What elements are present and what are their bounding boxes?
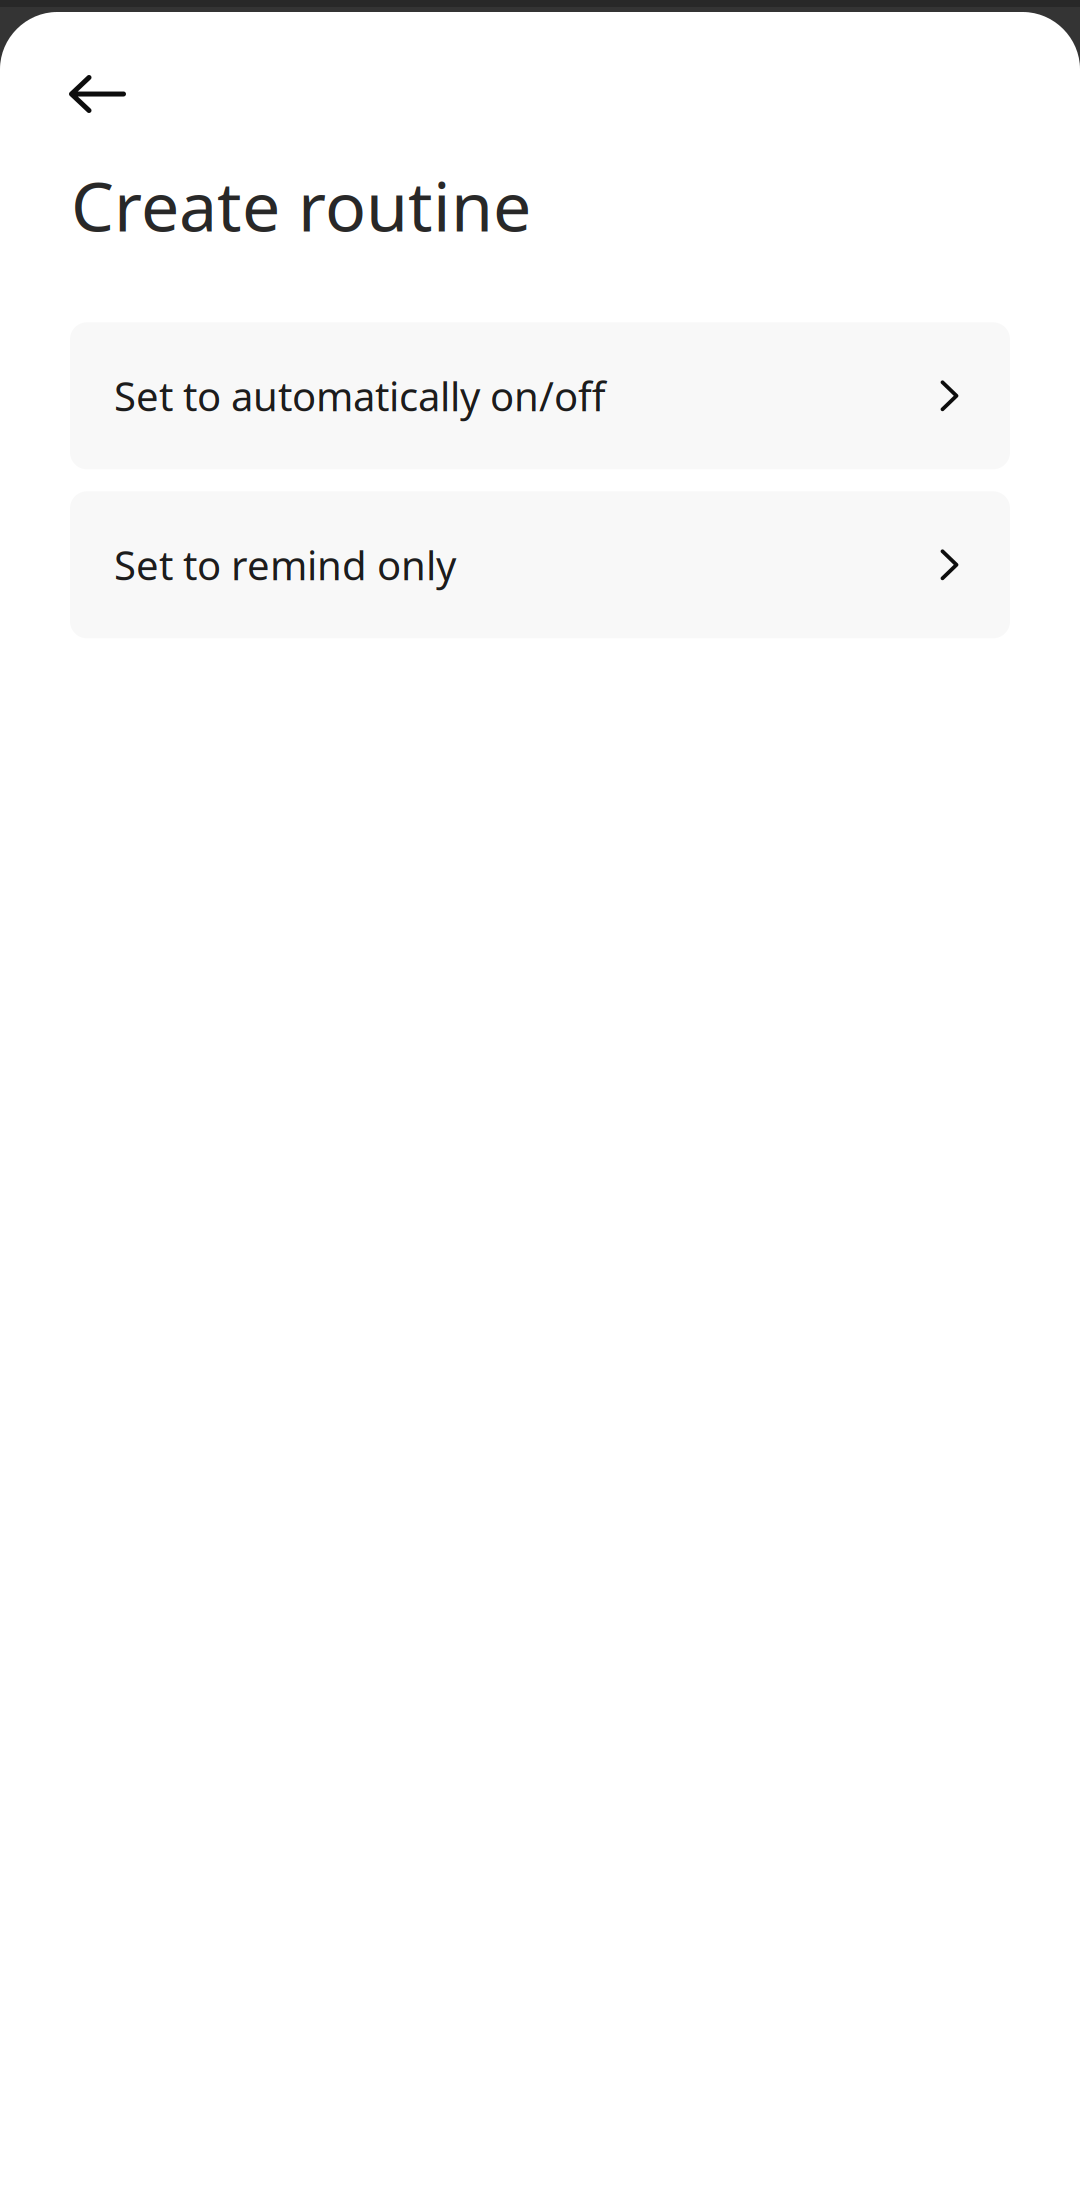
button[interactable]: Set to remind only — [70, 491, 1010, 638]
staticText: Set to automatically on/off — [114, 369, 606, 422]
staticText: Create routine — [71, 160, 531, 250]
button[interactable]: Back — [47, 53, 148, 135]
button[interactable]: Set to automatically on/off — [70, 322, 1010, 469]
staticText: Set to remind only — [114, 538, 456, 591]
